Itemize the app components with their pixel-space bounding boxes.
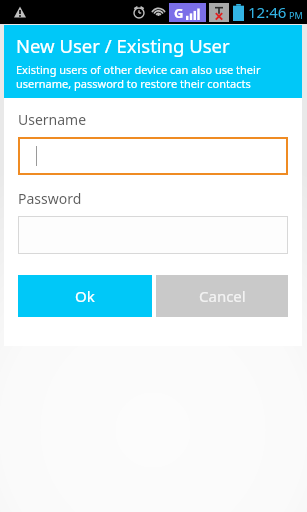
staticText: Cancel [199,286,246,306]
staticText: G [174,4,184,22]
button[interactable]: Cancel [156,275,288,317]
staticText: New User / Existing User [16,33,230,58]
staticText: Username [18,110,87,129]
staticText: PM [289,9,303,21]
staticText: Existing users of other device can also … [16,62,261,91]
staticText: 12:46 [248,2,287,22]
button[interactable] [18,137,288,175]
staticText: Password [18,189,82,208]
staticText: Ok [75,286,95,306]
button[interactable] [18,216,288,254]
button[interactable]: Ok [18,275,152,317]
